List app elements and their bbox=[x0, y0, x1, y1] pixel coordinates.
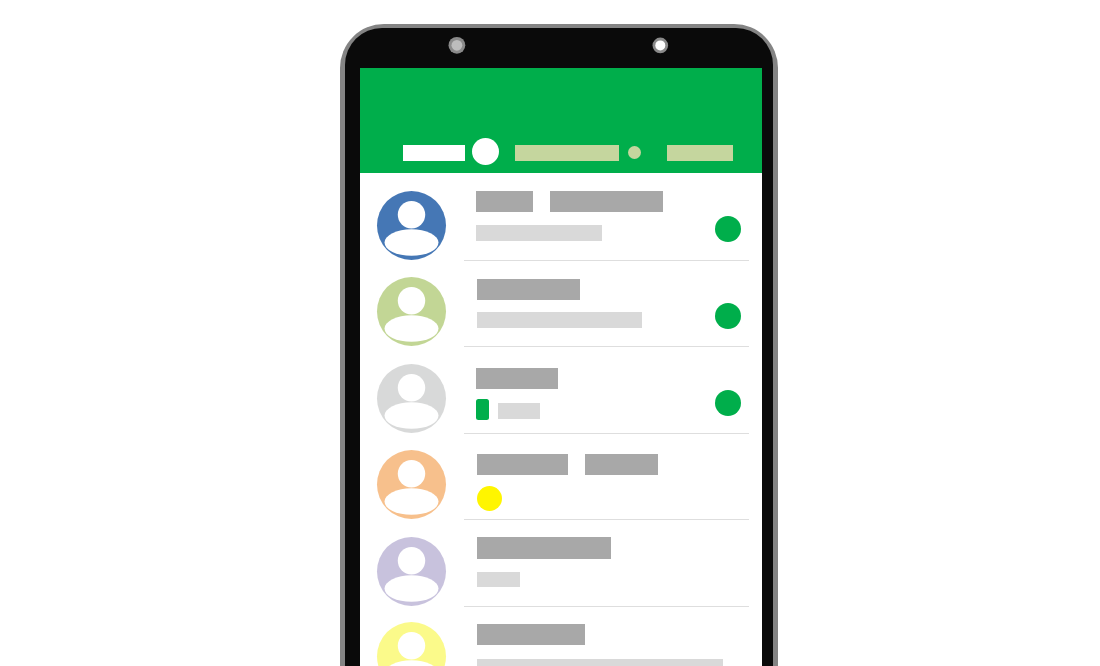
button[interactable]: Account bbox=[472, 138, 499, 165]
button[interactable]: More options bbox=[628, 146, 641, 159]
button[interactable]: Status: away bbox=[477, 486, 502, 511]
button[interactable]: Status: online bbox=[715, 303, 741, 329]
button[interactable]: Contact list item bbox=[360, 606, 762, 666]
button[interactable]: Status: online bbox=[715, 216, 741, 242]
button[interactable]: Contact list item bbox=[360, 347, 762, 433]
button[interactable]: Contact list item bbox=[360, 173, 762, 260]
button[interactable]: Contact list item bbox=[360, 519, 762, 606]
button[interactable]: Status: online bbox=[715, 390, 741, 416]
button[interactable]: Contact list item bbox=[360, 260, 762, 347]
button[interactable]: Contact list item bbox=[360, 433, 762, 520]
